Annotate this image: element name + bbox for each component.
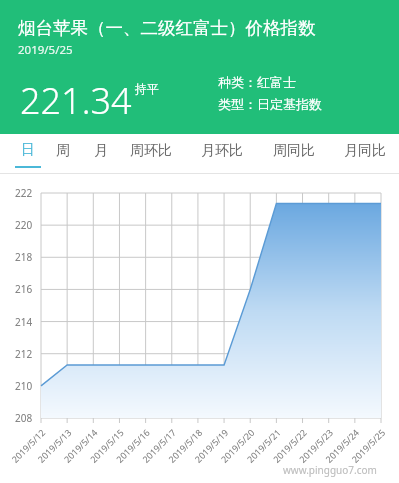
staticText: 月环比 [201,142,243,160]
button[interactable]: 月同比 [338,134,392,174]
staticText: 月 [94,142,108,160]
staticText: 种类：红富士 [218,74,296,90]
staticText: 类型：日定基指数 [218,96,322,112]
staticText: 周 [56,142,70,160]
staticText: 烟台苹果（一、二级红富士）价格指数 [18,17,316,39]
staticText: 2019/5/25 [18,42,73,58]
button[interactable]: 周同比 [267,134,321,174]
button[interactable]: 月 [88,134,114,174]
button[interactable]: 月环比 [195,134,249,174]
button[interactable]: 日 [15,134,41,174]
staticText: 周环比 [130,142,172,160]
staticText: 日 [21,141,35,159]
staticText: 221.34 [20,76,132,125]
button[interactable]: 周环比 [124,134,178,174]
staticText: 月同比 [344,142,386,160]
button[interactable]: 周 [50,134,76,174]
staticText: 持平 [135,81,159,96]
staticText: 周同比 [273,142,315,160]
